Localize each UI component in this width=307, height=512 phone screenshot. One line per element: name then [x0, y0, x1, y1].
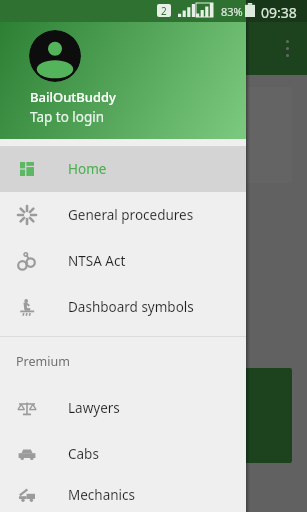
button[interactable]: General procedures	[0, 192, 246, 238]
staticText: Cabs	[68, 445, 99, 463]
button[interactable]: BailOutBuddy	[0, 22, 246, 139]
staticText: 09:38	[261, 3, 297, 22]
staticText: NTSA Act	[68, 252, 126, 270]
staticText: Premium	[16, 353, 70, 370]
staticText: Mechanics	[68, 486, 136, 504]
button[interactable]: BailOutB uddy web	[15, 368, 292, 463]
staticText: 83%	[221, 4, 243, 19]
staticText: BailOutB uddy web	[25, 402, 103, 448]
button[interactable]: Lawyers	[0, 385, 246, 431]
button[interactable]: Dashboard symbols	[0, 284, 246, 330]
button[interactable]: More options	[286, 40, 289, 57]
staticText: 2	[161, 4, 167, 17]
staticText: Home	[68, 160, 107, 178]
button[interactable]: Home	[0, 146, 246, 192]
staticText: Tap to login	[30, 108, 105, 126]
button[interactable]: NTSA Act	[0, 238, 246, 284]
staticText: Dashboard symbols	[68, 298, 194, 316]
button[interactable]: Cabs	[0, 431, 246, 477]
staticText: BailOutBuddy	[30, 88, 116, 106]
button[interactable]: Mechanics	[0, 477, 246, 512]
staticText: General procedures	[68, 206, 194, 224]
staticText: Lawyers	[68, 399, 120, 417]
